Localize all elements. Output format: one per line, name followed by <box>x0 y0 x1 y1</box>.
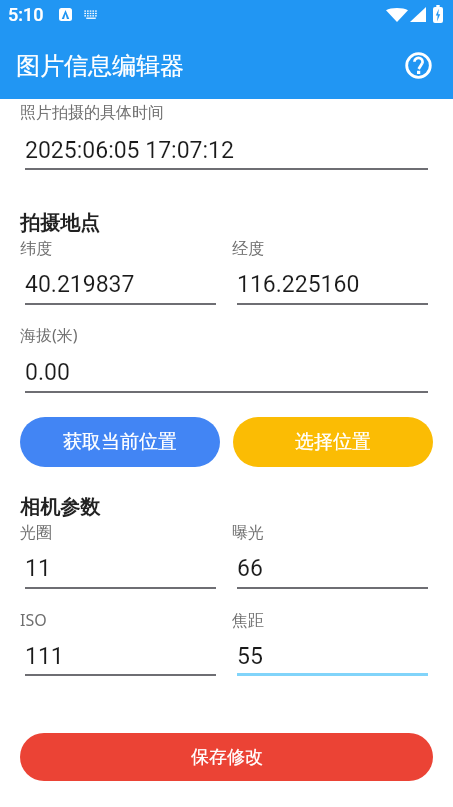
staticText: 相机参数 <box>20 495 100 520</box>
button[interactable]: 曝光 <box>232 523 428 589</box>
staticText: 拍摄地点 <box>20 211 100 236</box>
staticText: 图片信息编辑器 <box>16 51 184 81</box>
button[interactable]: 获取当前位置 <box>20 417 220 467</box>
button[interactable]: 焦距 <box>232 611 428 676</box>
staticText: ISO <box>20 609 47 631</box>
button[interactable]: 纬度 <box>20 239 216 305</box>
button[interactable]: 选择位置 <box>233 417 433 467</box>
staticText: 40.219837 <box>25 271 135 298</box>
staticText: 0.00 <box>25 359 70 386</box>
staticText: 2025:06:05 17:07:12 <box>25 137 234 164</box>
staticText: 111 <box>25 643 64 670</box>
button[interactable]: ISO <box>20 609 216 676</box>
button[interactable]: 照片拍摄的具体时间 <box>20 103 428 170</box>
staticText: 光圈 <box>20 523 52 543</box>
staticText: 纬度 <box>20 239 52 259</box>
staticText: 116.225160 <box>237 271 360 298</box>
staticText: 66 <box>237 555 263 582</box>
staticText: 经度 <box>232 239 264 259</box>
staticText: 5:10 <box>8 4 44 25</box>
staticText: 焦距 <box>232 611 264 631</box>
staticText: 海拔(米) <box>20 324 78 346</box>
button[interactable]: 经度 <box>232 239 428 305</box>
button[interactable]: 保存修改 <box>20 733 433 781</box>
staticText: 11 <box>25 555 51 582</box>
button[interactable]: 海拔(米) <box>20 324 428 393</box>
staticText: 选择位置 <box>295 430 371 454</box>
staticText: 照片拍摄的具体时间 <box>20 103 164 123</box>
staticText: 保存修改 <box>191 746 263 769</box>
staticText: 55 <box>237 643 263 670</box>
staticText: 曝光 <box>232 523 264 543</box>
button[interactable]: Help <box>396 43 440 87</box>
button[interactable]: 光圈 <box>20 523 216 589</box>
staticText: 获取当前位置 <box>63 430 177 454</box>
